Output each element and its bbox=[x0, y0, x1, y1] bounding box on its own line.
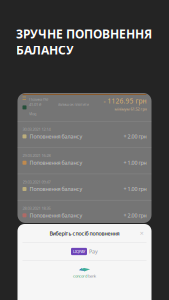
staticText: Поповнення балансу bbox=[29, 185, 82, 193]
staticText: ЗРУЧНЕ ПОПОВНЕННЯ bbox=[16, 26, 152, 42]
staticText: LIQPAY bbox=[73, 249, 85, 254]
staticText: ✕ bbox=[139, 230, 143, 237]
staticText: + 2.00 грн bbox=[123, 133, 146, 140]
staticText: 29.03.2021 09:47 bbox=[22, 179, 50, 184]
staticText: Vlog bbox=[29, 111, 36, 116]
staticText: 30.03.2021 12:14 bbox=[22, 127, 50, 132]
button[interactable]: 28.03.2021 18:35 bbox=[17, 199, 151, 226]
staticText: + 1.00 грн bbox=[123, 159, 146, 166]
button[interactable]: 29.03.2021 09:47 bbox=[17, 173, 151, 199]
staticText: + 1.00 грн bbox=[123, 185, 146, 193]
staticText: + 2.00 грн bbox=[123, 212, 146, 219]
staticText: Позика (%) bbox=[29, 96, 48, 102]
staticText: Поповнення балансу bbox=[29, 133, 82, 140]
staticText: Поповнення балансу bbox=[29, 212, 82, 219]
button[interactable]: 30.03.2021 12:14 bbox=[17, 120, 151, 147]
staticText: 28.03.2021 18:35 bbox=[22, 205, 50, 211]
staticText: Поповнення балансу bbox=[29, 159, 82, 166]
staticText: Залишок платити bbox=[57, 101, 88, 107]
button[interactable]: 29.03.2021 16:28 bbox=[17, 147, 151, 173]
staticText: Pay bbox=[89, 248, 98, 255]
staticText: - 1126.95 грн bbox=[103, 96, 146, 105]
button[interactable]: Close bbox=[136, 228, 146, 238]
staticText: 29.03.2021 16:28 bbox=[22, 153, 50, 158]
button[interactable]: LIQPAY bbox=[22, 242, 146, 260]
staticText: мінімум 61.52 грн bbox=[114, 106, 146, 112]
staticText: concord bbox=[73, 273, 87, 279]
staticText: Виберіть спосіб поповнення bbox=[49, 230, 119, 237]
button[interactable]: concord bbox=[22, 261, 146, 285]
staticText: bank bbox=[88, 273, 96, 279]
staticText: БАЛАНСУ bbox=[16, 42, 74, 58]
staticText: 41.01 ₴ bbox=[29, 102, 41, 107]
